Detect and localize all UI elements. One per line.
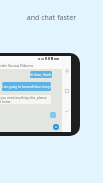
button[interactable]: I am going to forward them to my team xyxy=(2,82,51,91)
staticText: I am going to forward them to my team xyxy=(2,85,51,89)
staticText: Ok, if you need anything else, please le… xyxy=(0,96,50,104)
button[interactable]: Ok, if you need anything else, please le… xyxy=(0,95,51,104)
button[interactable]: Home xyxy=(64,88,70,94)
button[interactable]: Send xyxy=(53,124,59,130)
staticText: and chat faster xyxy=(0,13,103,23)
staticText: Eduardo Sousa Ribeiro xyxy=(0,63,34,68)
button[interactable]: Eduardo Sousa Ribeiro xyxy=(0,61,62,69)
button[interactable]: Add xyxy=(64,68,70,74)
button[interactable]: Hi there, thank you xyxy=(30,71,52,78)
button[interactable]: Share xyxy=(64,108,70,114)
button[interactable]: Attach xyxy=(50,112,56,118)
staticText: Hi there, thank you xyxy=(30,73,52,77)
